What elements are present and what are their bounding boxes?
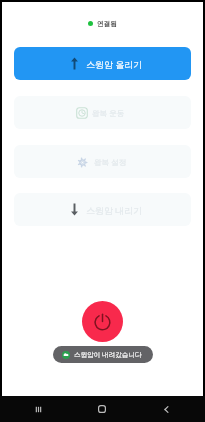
button[interactable]: Home <box>70 396 134 422</box>
button[interactable]: 스윙암 내리기 <box>14 193 191 226</box>
button[interactable]: 왕복 운동 <box>14 96 191 129</box>
button[interactable]: Recents <box>7 396 70 422</box>
button[interactable]: 스윙암 올리기 <box>14 47 191 80</box>
staticText: 스윙암 내리기 <box>86 204 143 216</box>
staticText: 스윙암이 내려갔습니다 <box>74 350 142 359</box>
staticText: 왕복 설정 <box>94 157 127 167</box>
staticText: 왕복 운동 <box>92 108 125 118</box>
staticText: 스윙암 올리기 <box>86 58 143 70</box>
button[interactable]: Back <box>134 396 198 422</box>
button[interactable]: 스윙암이 내려갔습니다 <box>53 346 153 363</box>
staticText: 연결됨 <box>97 20 117 28</box>
button[interactable]: 왕복 설정 <box>14 145 191 178</box>
button[interactable]: Power <box>82 301 123 342</box>
